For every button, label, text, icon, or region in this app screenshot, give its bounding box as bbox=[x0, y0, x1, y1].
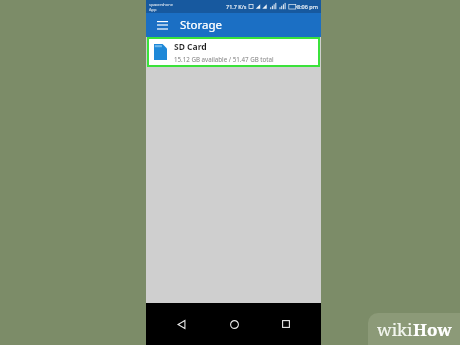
staticText: 8:06 pm bbox=[297, 3, 318, 10]
staticText: spacershone bbox=[149, 2, 173, 7]
button[interactable]: Back bbox=[164, 307, 198, 341]
staticText: 15.12 GB available / 51.47 GB total bbox=[174, 55, 274, 63]
button[interactable]: SD Card bbox=[149, 39, 318, 65]
button[interactable]: Open navigation drawer bbox=[153, 16, 171, 34]
button[interactable]: Recent apps bbox=[269, 307, 303, 341]
staticText: wiki bbox=[377, 318, 413, 341]
staticText: How bbox=[413, 318, 452, 341]
staticText: 71.7 K/s bbox=[226, 3, 247, 10]
staticText: SD Card bbox=[174, 41, 207, 53]
staticText: App bbox=[149, 7, 157, 12]
staticText: Storage bbox=[180, 17, 222, 33]
button[interactable]: Home bbox=[217, 307, 251, 341]
